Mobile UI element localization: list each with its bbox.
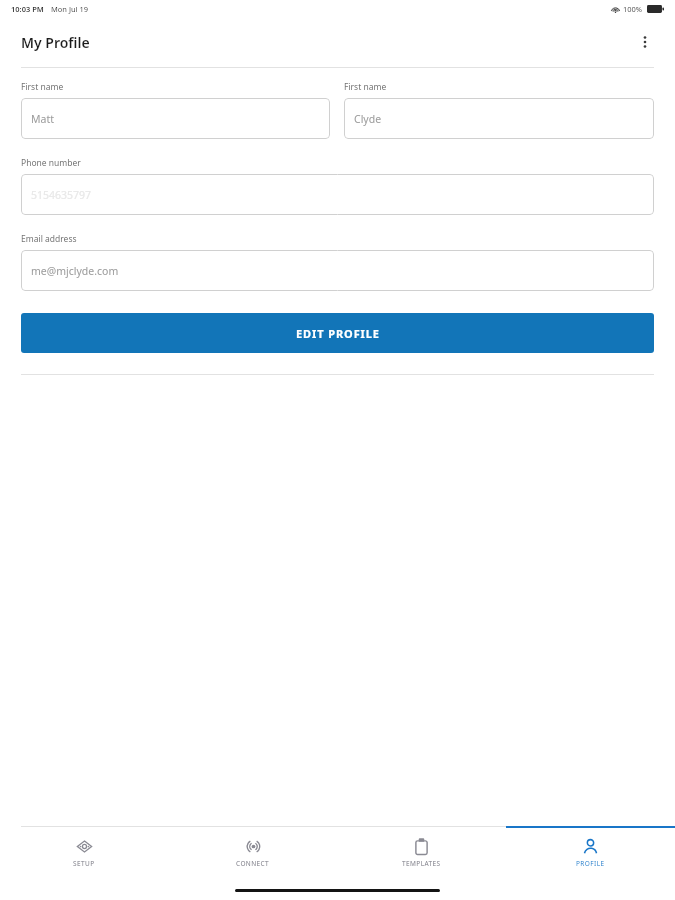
button[interactable]: EDIT PROFILE [21, 313, 654, 353]
staticText: me@mjclyde.com [31, 264, 119, 278]
button[interactable]: TEMPLATES [337, 826, 506, 880]
staticText: Mon Jul 19 [51, 4, 89, 14]
staticText: 100% [623, 4, 643, 14]
button[interactable]: me@mjclyde.com [21, 250, 654, 291]
button[interactable]: CONNECT [168, 826, 337, 880]
staticText: TEMPLATES [402, 859, 441, 868]
staticText: Matt [31, 112, 54, 126]
staticText: First name [21, 81, 64, 93]
staticText: My Profile [21, 33, 90, 52]
staticText: Email address [21, 233, 77, 245]
button[interactable]: More options [629, 26, 661, 58]
staticText: 10:03 PM [11, 4, 44, 14]
staticText: PROFILE [576, 859, 605, 868]
button[interactable]: SETUP [0, 826, 168, 880]
staticText: EDIT PROFILE [296, 326, 380, 341]
button[interactable]: 5154635797 [21, 174, 654, 215]
button[interactable]: Matt [21, 98, 330, 139]
staticText: SETUP [73, 859, 95, 868]
staticText: 5154635797 [31, 188, 92, 202]
button[interactable]: Clyde [344, 98, 654, 139]
staticText: Clyde [354, 112, 382, 126]
staticText: CONNECT [236, 859, 270, 868]
staticText: Phone number [21, 157, 81, 169]
button[interactable]: PROFILE [506, 826, 675, 880]
staticText: First name [344, 81, 387, 93]
